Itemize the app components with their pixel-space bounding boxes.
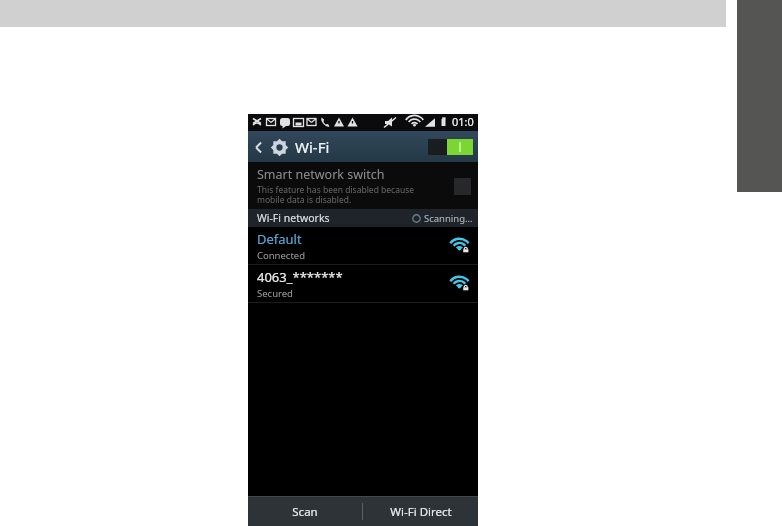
button[interactable]: Smart network switch <box>248 162 478 209</box>
staticText: 4063_******* <box>257 268 343 286</box>
staticText: Wi-Fi Direct <box>390 504 452 520</box>
staticText: Scanning... <box>424 212 473 225</box>
staticText: Wi-Fi networks <box>257 211 330 225</box>
staticText: Default <box>257 230 302 248</box>
other: Settings <box>270 138 289 157</box>
button[interactable]: Back <box>248 131 478 162</box>
staticText: Wi-Fi <box>295 137 330 157</box>
staticText: Connected <box>257 249 306 262</box>
staticText: Scan <box>292 504 318 520</box>
button[interactable]: Scan <box>248 497 362 526</box>
staticText: This feature has been disabled because m… <box>257 184 415 205</box>
other: Wi-Fi signal <box>450 275 470 293</box>
other: Wi-Fi signal <box>450 237 470 255</box>
staticText: 01:06 <box>452 114 475 131</box>
button[interactable]: Wi-Fi Direct <box>363 497 478 526</box>
button[interactable]: Smart network switch checkbox <box>452 176 472 196</box>
staticText: Secured <box>257 287 293 300</box>
button[interactable]: 4063_******* <box>248 265 478 302</box>
button[interactable]: Back <box>253 141 266 154</box>
staticText: Smart network switch <box>257 166 385 183</box>
button[interactable]: Default <box>248 227 478 264</box>
button[interactable]: Wi-Fi on/off <box>428 139 473 155</box>
